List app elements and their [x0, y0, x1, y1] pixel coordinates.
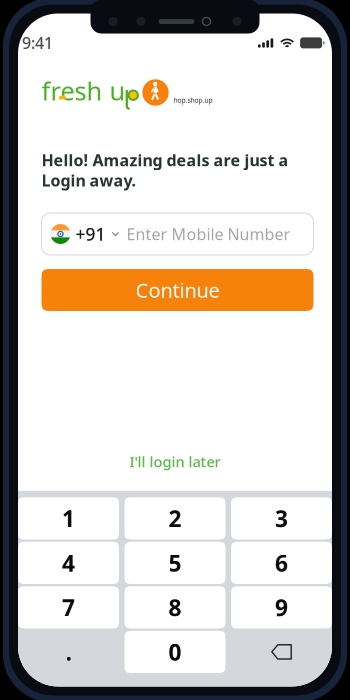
- button[interactable]: I'll login later: [117, 446, 232, 477]
- staticText: 4: [62, 548, 75, 578]
- staticText: I'll login later: [129, 452, 220, 471]
- staticText: fresh u: [41, 74, 125, 107]
- button[interactable]: 1: [18, 497, 119, 539]
- staticText: 3: [275, 503, 288, 533]
- staticText: 2: [168, 503, 181, 533]
- button[interactable]: 5: [124, 542, 225, 584]
- staticText: Enter Mobile Number: [126, 223, 290, 245]
- staticText: 8: [168, 592, 181, 622]
- button[interactable]: 8: [124, 586, 225, 628]
- staticText: Continue: [135, 277, 219, 303]
- staticText: Login away.: [41, 170, 135, 191]
- staticText: 9:41: [22, 32, 53, 53]
- staticText: hop.shop.up: [173, 96, 212, 104]
- button[interactable]: Delete: [231, 631, 332, 673]
- button[interactable]: 2: [124, 497, 225, 539]
- button[interactable]: 4: [18, 542, 119, 584]
- button[interactable]: .: [18, 631, 119, 673]
- staticText: 7: [62, 592, 75, 622]
- button[interactable]: 9: [231, 586, 332, 628]
- button[interactable]: 0: [124, 631, 225, 673]
- staticText: +91: [75, 222, 105, 245]
- staticText: 6: [275, 548, 288, 578]
- button[interactable]: Country code +91: [41, 213, 126, 255]
- staticText: 0: [168, 637, 181, 667]
- staticText: 9: [275, 592, 288, 622]
- button[interactable]: 6: [231, 542, 332, 584]
- staticText: 5: [168, 548, 181, 578]
- staticText: .: [65, 637, 71, 667]
- staticText: Hello! Amazing deals are just a: [41, 149, 288, 171]
- button[interactable]: Continue: [41, 269, 313, 311]
- button[interactable]: 3: [231, 497, 332, 539]
- staticText: 1: [62, 503, 75, 533]
- button[interactable]: 7: [18, 586, 119, 628]
